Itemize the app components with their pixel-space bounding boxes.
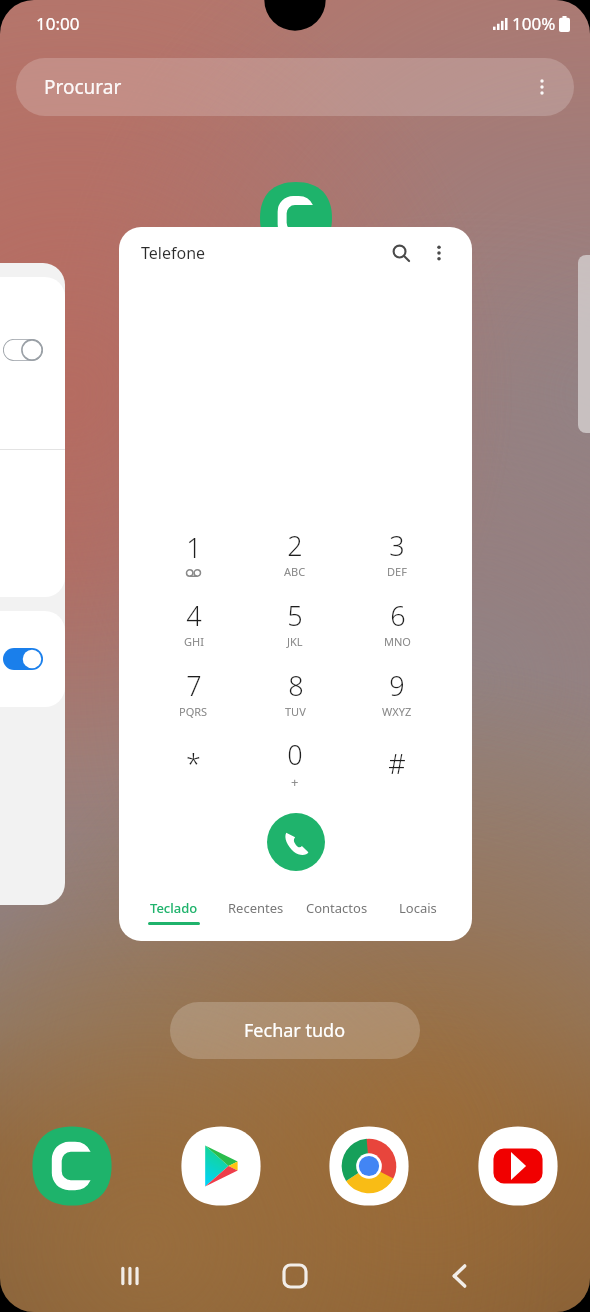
button[interactable]: More options [526, 71, 558, 103]
staticText: Procurar [44, 74, 122, 100]
button[interactable]: 4 [143, 593, 244, 653]
button[interactable]: Toggle off [3, 339, 43, 361]
staticText: 2 [287, 527, 303, 564]
staticText: 5 [287, 597, 303, 634]
button[interactable]: YouTube [474, 1122, 562, 1210]
staticText: 7 [186, 667, 202, 704]
staticText: Recentes [228, 899, 284, 917]
button[interactable]: 0 [244, 733, 346, 793]
button[interactable]: Recentes [215, 899, 296, 922]
staticText: TUV [285, 704, 306, 719]
button[interactable]: 2 [244, 523, 346, 583]
button[interactable]: 5 [244, 593, 346, 653]
button[interactable]: 3 [346, 523, 448, 583]
staticText: 3 [389, 527, 405, 564]
staticText: # [388, 745, 406, 782]
staticText: ABC [284, 564, 306, 579]
staticText: WXYZ [382, 704, 412, 719]
button[interactable]: Play Store [177, 1122, 265, 1210]
staticText: + [291, 773, 299, 791]
button[interactable]: Toggle on [3, 648, 43, 670]
staticText: Teclado [150, 899, 198, 917]
button[interactable]: Recents [98, 1243, 164, 1309]
staticText: * [186, 745, 201, 782]
button[interactable]: 8 [244, 663, 346, 723]
staticText: 0 [287, 736, 303, 773]
button[interactable]: Locais [377, 899, 458, 922]
staticText: 6 [390, 597, 406, 634]
button[interactable]: Teclado [133, 899, 215, 925]
button[interactable]: Telefone [119, 227, 472, 941]
staticText: Locais [399, 899, 437, 917]
staticText: JKL [287, 634, 303, 649]
staticText: Contactos [306, 899, 368, 917]
staticText: PQRS [179, 704, 208, 719]
button[interactable]: 9 [346, 663, 448, 723]
staticText: 4 [186, 597, 202, 634]
button[interactable]: 1 [143, 523, 244, 583]
button[interactable]: Contactos [296, 899, 377, 922]
button[interactable]: Call [267, 813, 325, 871]
button[interactable]: Toggle off [0, 263, 65, 905]
staticText: 10:00 [36, 12, 80, 35]
staticText: Fechar tudo [244, 1018, 346, 1043]
button[interactable]: Procurar [16, 58, 574, 116]
button[interactable]: Back [426, 1243, 492, 1309]
button[interactable]: Home [262, 1243, 328, 1309]
staticText: 9 [389, 667, 405, 704]
staticText: MNO [384, 634, 411, 649]
staticText: DEF [387, 564, 407, 579]
button[interactable]: # [346, 733, 448, 793]
staticText: 8 [288, 667, 304, 704]
button[interactable]: * [143, 733, 244, 793]
button[interactable]: Telefone [28, 1122, 116, 1210]
staticText: GHI [184, 634, 204, 649]
button[interactable]: Chrome [325, 1122, 413, 1210]
other: Telefone [256, 178, 336, 258]
button[interactable]: 6 [346, 593, 448, 653]
button[interactable]: More options [422, 236, 456, 270]
staticText: Telefone [141, 242, 206, 264]
button[interactable]: 7 [143, 663, 244, 723]
button[interactable]: Fechar tudo [170, 1002, 420, 1059]
staticText: 100% [512, 12, 556, 35]
button[interactable]: Search [384, 236, 418, 270]
staticText: 1 [186, 529, 202, 566]
